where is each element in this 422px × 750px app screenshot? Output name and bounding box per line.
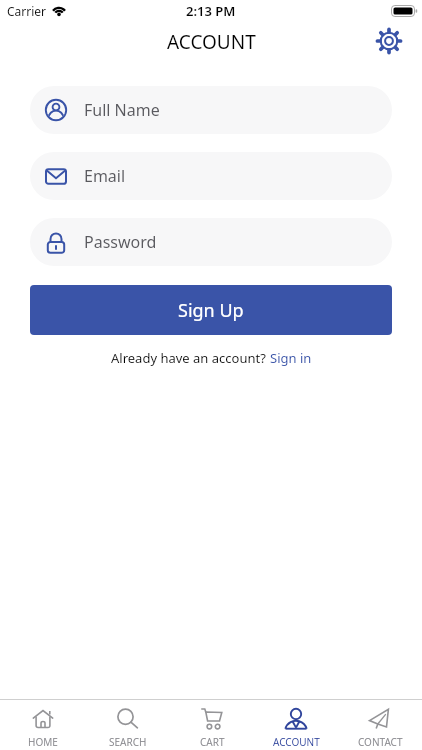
staticText: ACCOUNT <box>167 29 256 55</box>
staticText: Password <box>84 231 157 253</box>
button[interactable]: Password <box>30 218 392 266</box>
staticText: HOME <box>28 735 58 749</box>
staticText: CONTACT <box>358 735 403 749</box>
staticText: Already have an account? <box>111 349 270 367</box>
button[interactable]: HOME <box>0 700 85 750</box>
button[interactable] <box>374 26 404 56</box>
button[interactable]: CONTACT <box>338 700 422 750</box>
button[interactable]: Sign Up <box>30 285 392 335</box>
staticText: CART <box>200 735 225 749</box>
button[interactable]: Full Name <box>30 86 392 134</box>
staticText: 2:13 PM <box>186 2 236 20</box>
staticText: Carrier <box>7 3 47 19</box>
button[interactable]: SEARCH <box>85 700 170 750</box>
button[interactable]: Sign in <box>270 349 312 367</box>
staticText: Full Name <box>84 99 160 121</box>
button[interactable]: Email <box>30 152 392 200</box>
staticText: Email <box>84 165 126 187</box>
staticText: Sign Up <box>178 298 244 323</box>
button[interactable]: ACCOUNT <box>254 700 338 750</box>
staticText: ACCOUNT <box>273 735 320 749</box>
staticText: SEARCH <box>109 735 147 749</box>
button[interactable]: CART <box>170 700 254 750</box>
